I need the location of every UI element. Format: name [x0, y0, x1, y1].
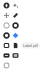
- button[interactable]: Record: [11, 20, 20, 30]
- button[interactable]: Refresh: [2, 60, 11, 70]
- button[interactable]: Archive: [2, 50, 11, 60]
- staticText: Label pill: [23, 43, 38, 48]
- button[interactable]: Stop: [2, 30, 11, 40]
- button[interactable]: Square: [2, 40, 11, 50]
- button[interactable]: Circle: [2, 20, 11, 30]
- button[interactable]: Label pill: [21, 42, 40, 48]
- button[interactable]: Move: [2, 10, 11, 20]
- button[interactable]: Sparkles: [11, 0, 20, 10]
- button[interactable]: Document: [11, 40, 20, 50]
- button[interactable]: Diamond: [11, 30, 20, 40]
- button[interactable]: Send: [2, 0, 11, 10]
- button[interactable]: Photo: [11, 50, 20, 60]
- button[interactable]: Edit: [11, 10, 20, 20]
